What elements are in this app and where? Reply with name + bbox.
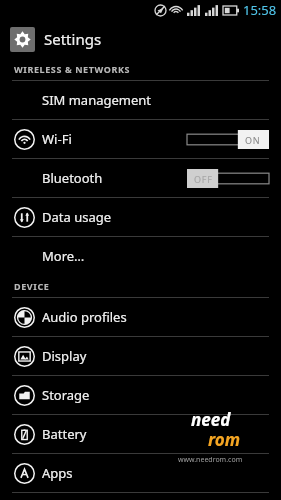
staticText: Data usage: [42, 208, 112, 226]
button[interactable]: Wi-Fi: [0, 120, 281, 158]
button[interactable]: ON: [187, 130, 269, 149]
button[interactable]: Apps: [0, 454, 281, 492]
staticText: Apps: [42, 464, 73, 482]
staticText: OFF: [194, 173, 213, 185]
button[interactable]: Bluetooth: [0, 159, 281, 197]
button[interactable]: Battery: [0, 415, 281, 453]
button[interactable]: Data usage: [0, 198, 281, 236]
button[interactable]: SIM management: [0, 81, 281, 119]
staticText: Audio profiles: [42, 308, 127, 326]
button[interactable]: OFF: [187, 169, 269, 188]
staticText: ON: [245, 134, 261, 146]
staticText: Battery: [42, 425, 87, 443]
staticText: SIM management: [42, 91, 152, 109]
button[interactable]: Audio profiles: [0, 298, 281, 336]
staticText: Storage: [42, 386, 90, 404]
button[interactable]: More…: [0, 237, 281, 275]
staticText: rom: [208, 428, 241, 451]
button[interactable]: Storage: [0, 376, 281, 414]
staticText: 15:58: [243, 1, 277, 19]
staticText: www.needrom.com: [178, 455, 243, 465]
staticText: DEVICE: [14, 280, 50, 292]
button[interactable]: Settings: [0, 20, 281, 58]
staticText: Wi-Fi: [42, 130, 72, 148]
staticText: More…: [42, 247, 85, 265]
button[interactable]: Display: [0, 337, 281, 375]
staticText: WIRELESS & NETWORKS: [14, 63, 131, 75]
staticText: Bluetooth: [42, 169, 103, 187]
staticText: Display: [42, 347, 87, 365]
staticText: Settings: [44, 29, 102, 49]
staticText: need: [191, 408, 231, 431]
